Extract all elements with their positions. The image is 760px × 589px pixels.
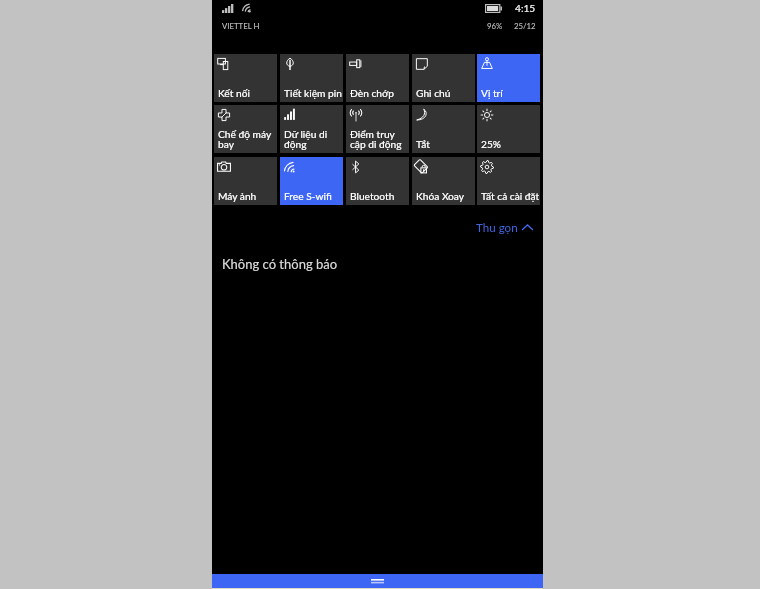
button[interactable]: Bluetooth	[346, 157, 409, 205]
button[interactable]: Vị trí	[477, 54, 540, 102]
button[interactable]: Tiết kiệm pin	[280, 54, 343, 102]
button[interactable]: Free S-wifi	[280, 157, 343, 205]
staticText: Chế độ máy bay	[218, 128, 278, 150]
button[interactable]: Khóa Xoay	[412, 157, 475, 205]
staticText: Máy ảnh	[218, 190, 278, 202]
button[interactable]: Ghi chú	[412, 54, 475, 102]
button[interactable]: Điểm truy cập di động	[346, 105, 409, 153]
staticText: Không có thông báo	[222, 256, 338, 272]
staticText: Dữ liệu di động	[284, 128, 344, 150]
staticText: 96%	[487, 21, 503, 30]
staticText: Ghi chú	[416, 87, 476, 99]
button[interactable]: Tắt	[412, 105, 475, 153]
staticText: 4:15	[515, 2, 536, 14]
staticText: Tắt	[416, 138, 476, 150]
button[interactable]: Máy ảnh	[214, 157, 277, 205]
staticText: Bluetooth	[350, 190, 410, 202]
staticText: Điểm truy cập di động	[350, 128, 410, 150]
staticText: 25/12	[514, 21, 536, 30]
button[interactable]: 25%	[477, 105, 540, 153]
button[interactable]: Tất cả cài đặt	[477, 157, 540, 205]
staticText: Kết nối	[218, 87, 278, 99]
staticText: Tất cả cài đặt	[481, 190, 541, 202]
staticText: Vị trí	[481, 87, 541, 99]
button[interactable]: Kết nối	[214, 54, 277, 102]
staticText: Khóa Xoay	[416, 190, 476, 202]
button[interactable]: Chế độ máy bay	[214, 105, 277, 153]
button[interactable]: Show navigation bar	[212, 574, 543, 588]
button[interactable]: Dữ liệu di động	[280, 105, 343, 153]
staticText: 25%	[481, 138, 541, 150]
staticText: Free S-wifi	[284, 190, 344, 202]
staticText: Đèn chớp	[350, 87, 410, 99]
button[interactable]: Đèn chớp	[346, 54, 409, 102]
staticText: Thu gọn	[476, 221, 518, 235]
staticText: Tiết kiệm pin	[284, 87, 344, 99]
staticText: VIETTEL H	[222, 21, 260, 30]
button[interactable]: Thu gọn	[476, 219, 533, 236]
